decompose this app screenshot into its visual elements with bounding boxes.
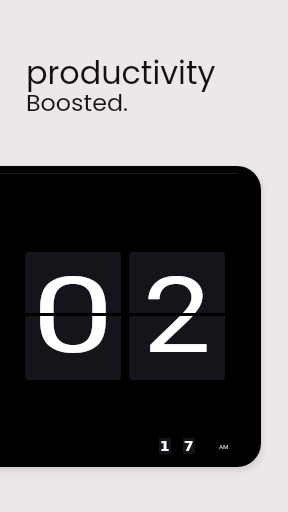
staticText: 0 bbox=[32, 254, 114, 378]
staticText: 2 bbox=[143, 254, 211, 378]
staticText: productivity bbox=[26, 51, 216, 96]
button[interactable]: productivity bbox=[26, 51, 216, 96]
button[interactable]: Boosted. bbox=[26, 86, 128, 119]
button[interactable]: 0 bbox=[25, 252, 121, 380]
button[interactable]: 2 bbox=[129, 252, 225, 380]
staticText: AM bbox=[219, 443, 229, 450]
staticText: 1 bbox=[160, 438, 170, 454]
staticText: Boosted. bbox=[26, 86, 128, 119]
button[interactable]: Flip clock showing 02:17 AM bbox=[0, 166, 261, 467]
staticText: 7 bbox=[184, 438, 194, 454]
